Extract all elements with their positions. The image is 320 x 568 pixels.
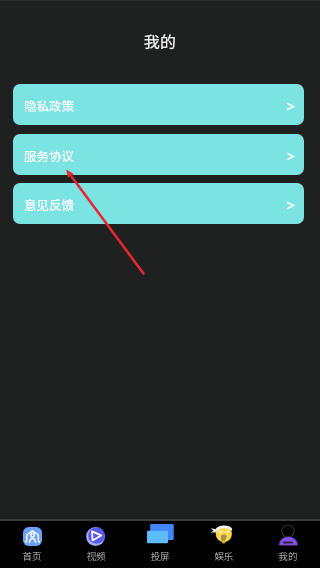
other: 投屏 xyxy=(146,525,174,547)
other: 视频 xyxy=(86,526,106,546)
staticText: 投屏 xyxy=(150,549,170,563)
staticText: 娱乐 xyxy=(214,549,234,563)
button[interactable]: 视频 xyxy=(64,521,128,563)
staticText: 我的 xyxy=(278,549,298,563)
staticText: 首页 xyxy=(22,549,42,563)
button[interactable]: 隐私政策 xyxy=(13,84,304,125)
button[interactable]: 意见反馈 xyxy=(13,183,304,224)
staticText: 隐私政策 xyxy=(24,96,75,114)
button[interactable]: 投屏 xyxy=(128,521,192,563)
other: 首页 xyxy=(23,527,42,546)
staticText: 意见反馈 xyxy=(24,195,75,213)
button[interactable]: 娱乐 xyxy=(192,521,256,563)
button[interactable]: 我的 xyxy=(256,521,320,563)
other: 我的 xyxy=(277,525,299,547)
staticText: 服务协议 xyxy=(24,146,75,164)
button[interactable]: 服务协议 xyxy=(13,134,304,175)
staticText: 视频 xyxy=(86,549,106,563)
other: 娱乐 xyxy=(212,524,236,548)
button[interactable]: 首页 xyxy=(0,521,64,563)
staticText: 我的 xyxy=(144,29,177,52)
